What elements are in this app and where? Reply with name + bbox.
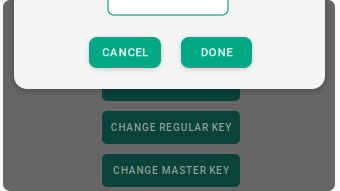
- staticText: DONE: [201, 46, 232, 59]
- button[interactable]: CANCEL: [89, 37, 161, 68]
- staticText: CANCEL: [102, 46, 148, 59]
- button[interactable]: CHANGE REGULAR KEY: [102, 111, 240, 144]
- button[interactable]: DONE: [181, 37, 252, 68]
- staticText: CHANGE MASTER KEY: [113, 165, 229, 176]
- button[interactable]: CHANGE MASTER KEY: [102, 154, 240, 187]
- staticText: CHANGE REGULAR KEY: [111, 122, 231, 133]
- button[interactable]: CHANGE PIN: [102, 68, 240, 101]
- staticText: CHANGE PIN: [138, 79, 204, 90]
